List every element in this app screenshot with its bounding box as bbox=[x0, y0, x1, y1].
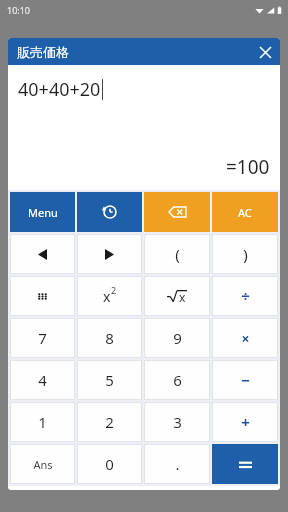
staticText: 7 bbox=[38, 328, 47, 348]
staticText: Ans bbox=[33, 457, 53, 472]
staticText: ÷ bbox=[241, 286, 250, 306]
staticText: 10:10 bbox=[7, 4, 31, 16]
button[interactable]: ÷ bbox=[212, 276, 278, 316]
staticText: ) bbox=[243, 244, 248, 264]
staticText: 1 bbox=[38, 412, 47, 432]
staticText: × bbox=[241, 329, 250, 348]
button[interactable]: . bbox=[144, 444, 210, 484]
staticText: x bbox=[179, 289, 186, 305]
button[interactable]: × bbox=[212, 318, 278, 358]
staticText: AC bbox=[238, 205, 252, 220]
button[interactable]: Keypad bbox=[10, 276, 75, 316]
staticText: . bbox=[175, 454, 180, 474]
button[interactable]: Ans bbox=[10, 444, 75, 484]
button[interactable]: 2 bbox=[77, 402, 142, 442]
button[interactable]: Left bbox=[10, 234, 75, 274]
staticText: 3 bbox=[173, 412, 182, 432]
staticText: 6 bbox=[173, 370, 182, 390]
button[interactable]: 9 bbox=[144, 318, 210, 358]
button[interactable]: − bbox=[212, 360, 278, 400]
staticText: 8 bbox=[105, 328, 114, 348]
staticText: + bbox=[241, 412, 250, 432]
button[interactable]: 3 bbox=[144, 402, 210, 442]
staticText: ( bbox=[175, 244, 180, 264]
button[interactable]: 1 bbox=[10, 402, 75, 442]
staticText: Menu bbox=[28, 205, 58, 220]
button[interactable]: Equals bbox=[212, 444, 278, 484]
staticText: 9 bbox=[173, 328, 182, 348]
button[interactable]: Right bbox=[77, 234, 142, 274]
staticText: x bbox=[103, 287, 111, 306]
button[interactable]: Square root bbox=[144, 276, 210, 316]
staticText: − bbox=[241, 370, 250, 390]
button[interactable]: + bbox=[212, 402, 278, 442]
staticText: 2 bbox=[111, 284, 117, 296]
button[interactable]: Backspace bbox=[144, 192, 210, 232]
staticText: 40+40+20 bbox=[18, 77, 101, 102]
button[interactable]: Menu bbox=[10, 192, 75, 232]
button[interactable]: 4 bbox=[10, 360, 75, 400]
button[interactable]: 6 bbox=[144, 360, 210, 400]
button[interactable]: 0 bbox=[77, 444, 142, 484]
staticText: 2 bbox=[105, 412, 114, 432]
button[interactable]: 5 bbox=[77, 360, 142, 400]
button[interactable]: Square bbox=[77, 276, 142, 316]
button[interactable]: ( bbox=[144, 234, 210, 274]
staticText: 4 bbox=[38, 370, 47, 390]
staticText: =100 bbox=[226, 154, 270, 180]
button[interactable]: History bbox=[77, 192, 142, 232]
button[interactable]: 7 bbox=[10, 318, 75, 358]
staticText: 販売価格 bbox=[17, 44, 69, 60]
button[interactable]: 8 bbox=[77, 318, 142, 358]
staticText: 5 bbox=[105, 370, 114, 390]
staticText: 0 bbox=[105, 454, 114, 474]
button[interactable]: AC bbox=[212, 192, 278, 232]
button[interactable]: ) bbox=[212, 234, 278, 274]
button[interactable]: Close bbox=[254, 41, 276, 63]
